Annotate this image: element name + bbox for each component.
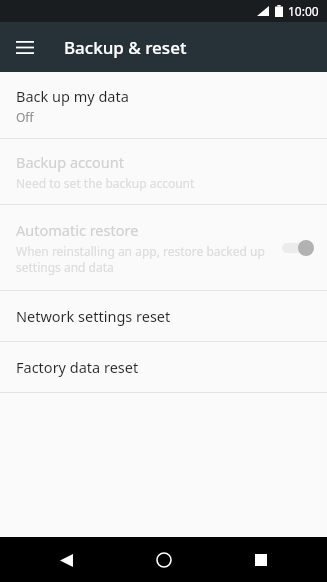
staticText: Off <box>16 109 34 125</box>
button[interactable]: Open navigation drawer <box>6 28 44 66</box>
button[interactable]: Back <box>46 540 86 580</box>
button[interactable]: Backup account <box>0 139 327 204</box>
button[interactable]: Back up my data <box>0 72 327 138</box>
staticText: Automatic restore <box>16 220 139 240</box>
button[interactable]: Home <box>144 540 184 580</box>
button[interactable]: Factory data reset <box>0 342 327 392</box>
button[interactable]: Automatic restore switch <box>279 233 315 263</box>
staticText: Backup & reset <box>64 36 187 59</box>
staticText: Need to set the backup account <box>16 175 195 191</box>
staticText: Backup account <box>16 152 124 172</box>
staticText: Back up my data <box>16 86 129 106</box>
button[interactable]: Network settings reset <box>0 291 327 341</box>
staticText: 10:00 <box>288 3 319 19</box>
button[interactable]: Recent apps <box>241 540 281 580</box>
staticText: Network settings reset <box>16 306 171 326</box>
staticText: Factory data reset <box>16 357 139 377</box>
staticText: When reinstalling an app, restore backed… <box>16 243 269 275</box>
button[interactable]: Automatic restore <box>0 205 327 290</box>
